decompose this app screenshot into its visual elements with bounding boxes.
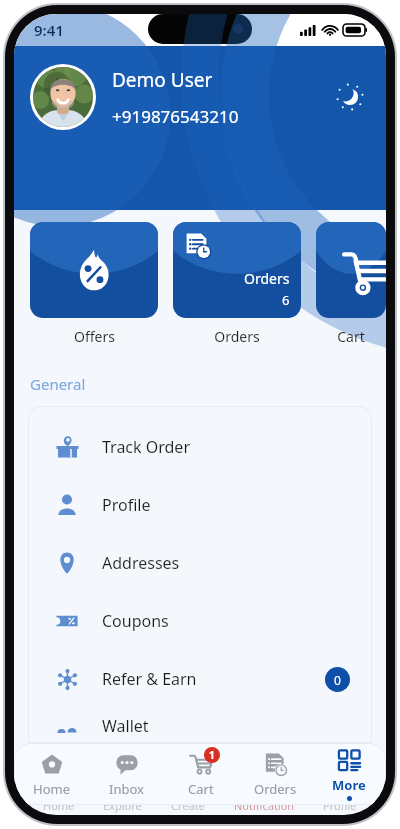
button[interactable]: Profile photo — [33, 67, 93, 127]
staticText: Offers — [74, 327, 115, 346]
staticText: Orders — [214, 327, 260, 346]
staticText: Inbox — [109, 780, 144, 798]
button[interactable]: Track Order — [28, 418, 372, 476]
button[interactable]: More — [312, 743, 386, 805]
staticText: Orders — [244, 269, 290, 288]
staticText: 6 — [282, 291, 290, 309]
staticText: Home — [33, 780, 70, 798]
button[interactable]: Orders — [173, 222, 301, 346]
button[interactable]: 1 — [164, 743, 238, 805]
button[interactable]: Offers — [30, 222, 158, 346]
staticText: General — [30, 374, 86, 394]
button[interactable]: Home — [14, 743, 89, 805]
button[interactable]: Profile — [28, 476, 372, 534]
button[interactable]: Refer & Earn — [28, 650, 372, 708]
staticText: More — [332, 776, 366, 794]
staticText: Cart — [337, 327, 365, 346]
staticText: Explore — [103, 798, 142, 813]
staticText: Create — [171, 798, 205, 813]
staticText: +919876543210 — [112, 105, 239, 128]
button[interactable]: Toggle dark mode — [330, 77, 370, 117]
staticText: Track Order — [102, 436, 191, 458]
staticText: Profile — [323, 798, 357, 813]
button[interactable]: Coupons — [28, 592, 372, 650]
staticText: Addresses — [102, 552, 180, 574]
staticText: Notification — [234, 798, 295, 813]
staticText: 1 — [209, 748, 215, 762]
staticText: Cart — [188, 780, 214, 798]
staticText: Refer & Earn — [102, 668, 197, 690]
staticText: Demo User — [112, 67, 213, 93]
staticText: Profile — [102, 494, 151, 516]
button[interactable]: Wallet — [28, 708, 372, 743]
staticText: 0 — [334, 672, 341, 688]
staticText: 9:41 — [34, 20, 64, 40]
button[interactable]: Orders — [238, 743, 312, 805]
staticText: Coupons — [102, 610, 169, 632]
staticText: Orders — [254, 780, 297, 798]
button[interactable]: Addresses — [28, 534, 372, 592]
staticText: Wallet — [102, 715, 149, 737]
button[interactable]: Cart — [316, 222, 386, 346]
staticText: Home — [43, 798, 75, 813]
button[interactable]: Inbox — [89, 743, 164, 805]
